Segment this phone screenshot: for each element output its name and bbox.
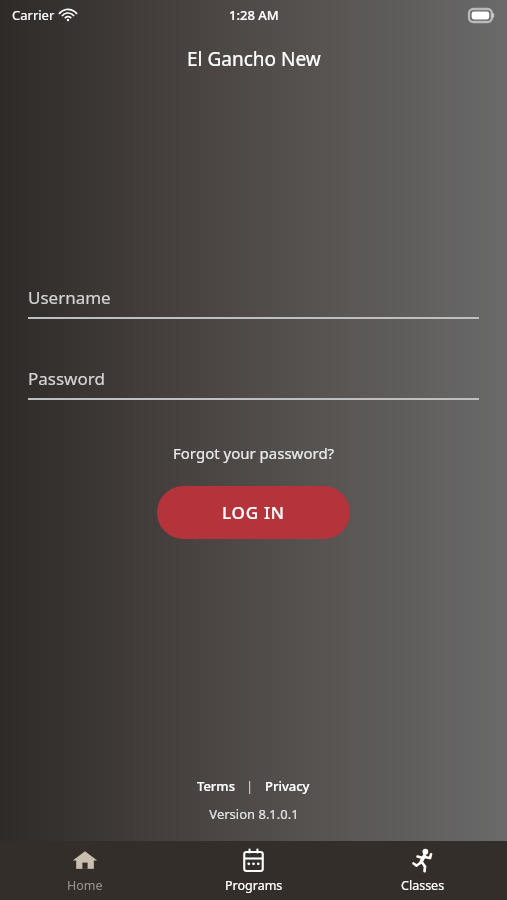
- button[interactable]: Username: [28, 286, 479, 319]
- staticText: Password: [28, 367, 105, 390]
- staticText: Privacy: [265, 777, 310, 795]
- other: Programs: [241, 848, 266, 873]
- staticText: El Gancho New: [187, 46, 321, 72]
- button[interactable]: Classes: [338, 841, 507, 900]
- button[interactable]: LOG IN: [157, 486, 350, 539]
- staticText: Classes: [401, 877, 445, 894]
- button[interactable]: Home: [0, 841, 169, 900]
- staticText: Version 8.1.0.1: [209, 805, 299, 823]
- button[interactable]: Privacy: [261, 775, 314, 797]
- other: Wi-Fi signal: [60, 9, 76, 21]
- staticText: Terms: [197, 777, 235, 795]
- button[interactable]: Forgot your password?: [163, 438, 345, 468]
- other: Classes: [410, 848, 435, 873]
- staticText: |: [246, 777, 254, 795]
- staticText: Forgot your password?: [173, 443, 335, 463]
- staticText: LOG IN: [222, 501, 285, 524]
- staticText: Home: [67, 877, 103, 894]
- button[interactable]: Programs: [169, 841, 338, 900]
- staticText: Username: [28, 286, 111, 309]
- staticText: 1:28 AM: [229, 6, 279, 24]
- button[interactable]: Terms: [193, 775, 239, 797]
- other: Battery full: [469, 9, 495, 22]
- staticText: Programs: [225, 877, 283, 894]
- button[interactable]: Password: [28, 367, 479, 400]
- staticText: Carrier: [12, 6, 55, 24]
- other: Home: [72, 847, 98, 873]
